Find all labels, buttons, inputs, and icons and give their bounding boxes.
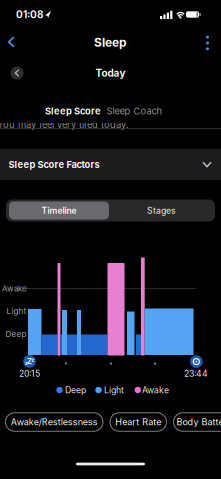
staticText: 20:15 bbox=[19, 368, 40, 379]
staticText: Sleep bbox=[94, 35, 127, 50]
button[interactable]: Awake/Restlessness bbox=[5, 413, 103, 431]
staticText: Deep bbox=[5, 329, 26, 339]
staticText: Heart Rate bbox=[115, 416, 161, 427]
staticText: 23:44 bbox=[184, 368, 208, 379]
button[interactable]: Sleep Score bbox=[42, 102, 104, 120]
staticText: Deep bbox=[65, 385, 86, 395]
staticText: Awake bbox=[2, 284, 27, 293]
button[interactable] bbox=[202, 32, 213, 54]
staticText: Awake/Restlessness bbox=[11, 416, 98, 427]
staticText: z bbox=[25, 360, 28, 366]
staticText: Today bbox=[95, 67, 125, 79]
button[interactable] bbox=[10, 66, 23, 79]
staticText: Sleep Score bbox=[45, 105, 101, 117]
staticText: z bbox=[31, 357, 34, 363]
button[interactable]: Body Battery bbox=[173, 413, 221, 431]
staticText: Light bbox=[6, 306, 26, 316]
staticText: Z bbox=[27, 357, 32, 366]
button[interactable]: Sleep Coach bbox=[103, 102, 165, 120]
button[interactable]: Stages bbox=[143, 201, 180, 220]
staticText: You may feel very tired today. bbox=[0, 119, 129, 130]
staticText: Body Battery bbox=[176, 416, 221, 427]
staticText: 01:08 bbox=[16, 8, 44, 21]
button[interactable]: Heart Rate bbox=[110, 413, 166, 431]
staticText: Light bbox=[104, 385, 124, 395]
staticText: Sleep Score Factors bbox=[8, 159, 99, 170]
button[interactable]: Timeline bbox=[9, 201, 109, 219]
staticText: Stages bbox=[147, 205, 176, 216]
staticText: Timeline bbox=[41, 205, 76, 216]
button[interactable]: Sleep Score Factors bbox=[0, 149, 221, 180]
staticText: Sleep Coach bbox=[106, 105, 162, 117]
staticText: Awake bbox=[142, 385, 169, 395]
button[interactable] bbox=[5, 33, 18, 51]
